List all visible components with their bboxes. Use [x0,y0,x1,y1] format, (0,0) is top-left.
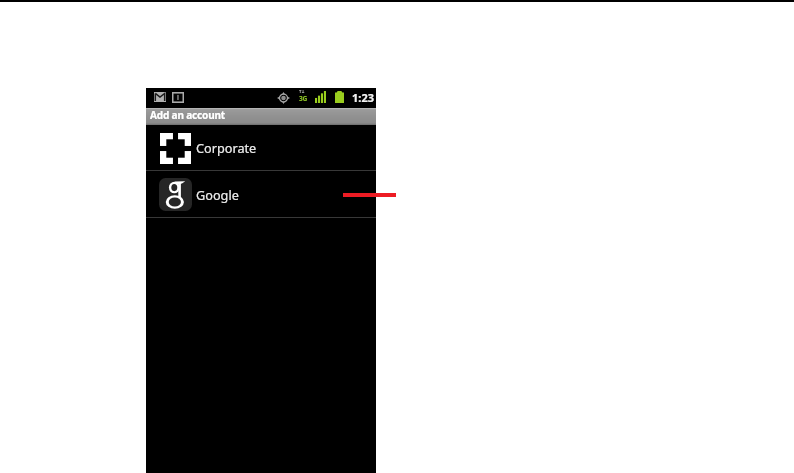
staticText: 1:23 [352,90,374,105]
button[interactable]: Corporate [146,124,376,170]
other: Signal [315,91,326,103]
staticText: Corporate [196,139,257,156]
other: GPS [277,92,290,104]
staticText: Google [196,186,239,203]
staticText: 3G [299,94,308,103]
other: Battery [335,91,344,103]
other: 3G network [299,90,310,101]
button[interactable]: Google [146,171,376,217]
staticText: Add an account [150,108,226,122]
other: Gmail [154,92,166,102]
other: Notification [172,92,184,103]
